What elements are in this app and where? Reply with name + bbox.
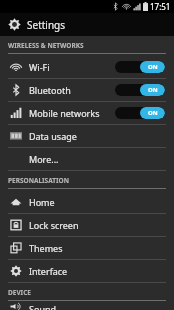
button[interactable]: Mobile networks [0, 102, 174, 124]
staticText: ON [148, 86, 158, 94]
button[interactable]: Sound [0, 303, 174, 310]
staticText: Wi-Fi [29, 61, 50, 73]
button[interactable]: Wi-Fi [0, 56, 174, 78]
button[interactable]: Toggle on [115, 107, 165, 119]
button[interactable]: Themes [0, 237, 174, 259]
staticText: Mobile networks [29, 107, 100, 119]
staticText: Themes [29, 242, 63, 254]
staticText: DEVICE [8, 288, 31, 297]
staticText: Sound [29, 303, 57, 310]
button[interactable]: Bluetooth [0, 79, 174, 101]
staticText: Bluetooth [29, 84, 71, 96]
staticText: Lock screen [29, 219, 79, 231]
staticText: More... [29, 153, 59, 165]
button[interactable]: Lock screen [0, 214, 174, 236]
staticText: Data usage [29, 130, 77, 142]
staticText: ON [148, 63, 158, 71]
button[interactable]: Settings [0, 13, 174, 36]
button[interactable]: More... [0, 148, 174, 170]
button[interactable]: Interface [0, 260, 174, 282]
button[interactable]: Home [0, 191, 174, 213]
staticText: ON [148, 109, 158, 117]
staticText: Home [29, 196, 55, 208]
button[interactable]: Toggle on [115, 61, 165, 73]
staticText: Settings [27, 18, 66, 32]
staticText: Interface [29, 265, 68, 277]
staticText: PERSONALISATION [8, 176, 69, 185]
staticText: WIRELESS & NETWORKS [8, 41, 84, 50]
button[interactable]: Data usage [0, 125, 174, 147]
button[interactable]: Toggle on [115, 84, 165, 96]
staticText: 17:51 [150, 1, 171, 12]
